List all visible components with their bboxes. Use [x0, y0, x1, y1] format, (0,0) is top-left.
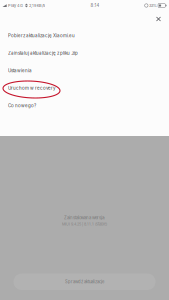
button[interactable]: Co nowego? [0, 97, 169, 114]
staticText: Zainstaluj aktualizację z pliku .zip [8, 50, 78, 56]
button[interactable]: Sprawdź aktualizacje [13, 273, 155, 290]
staticText: Zainstalowana wersja: [64, 215, 105, 220]
staticText: Pobierz aktualizację Xiaomi.eu [8, 33, 75, 38]
staticText: Ustawienia [8, 68, 32, 73]
button[interactable]: Close [151, 12, 165, 26]
staticText: 2,19 kB/s [28, 3, 45, 8]
staticText: Co nowego? [8, 103, 36, 108]
staticText: 8:14 [90, 3, 99, 8]
staticText: Uruchom w recovery [8, 85, 56, 91]
button[interactable]: Uruchom w recovery [0, 79, 169, 97]
staticText: Play 4G [7, 3, 25, 8]
button[interactable]: Ustawienia [0, 62, 169, 79]
staticText: Sprawdź aktualizacje [65, 279, 104, 284]
staticText: 33% [148, 3, 158, 8]
button[interactable]: Zainstaluj aktualizację z pliku .zip [0, 44, 169, 62]
staticText: MIUI 9.4.25 | 8.11.1 (stable) [62, 222, 107, 226]
button[interactable]: Pobierz aktualizację Xiaomi.eu [0, 27, 169, 44]
